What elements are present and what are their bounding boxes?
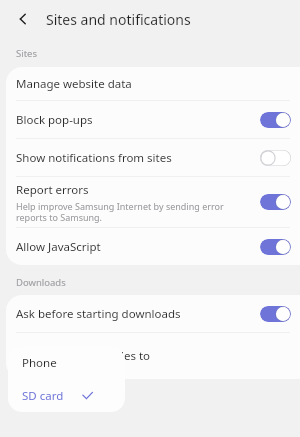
staticText: Help improve Samsung Internet by sending… bbox=[16, 200, 224, 223]
button[interactable]: Show notifications from sites bbox=[6, 139, 300, 176]
button[interactable]: Report errors bbox=[6, 177, 300, 227]
staticText: Save downloaded files to bbox=[16, 348, 151, 364]
staticText: Manage website data bbox=[16, 76, 132, 92]
button[interactable]: Ask before starting downloads bbox=[6, 295, 300, 332]
button[interactable]: Toggle on bbox=[260, 194, 291, 210]
staticText: Downloads bbox=[16, 276, 66, 289]
staticText: Block pop-ups bbox=[16, 112, 93, 128]
button[interactable]: Toggle on bbox=[260, 239, 291, 255]
button[interactable]: Toggle on bbox=[260, 306, 291, 322]
staticText: Phone bbox=[22, 355, 57, 371]
button[interactable]: Toggle on bbox=[260, 112, 291, 128]
button[interactable]: SD card bbox=[8, 379, 125, 412]
button[interactable]: Save downloaded files to bbox=[6, 333, 300, 379]
button[interactable]: Back bbox=[8, 4, 38, 34]
button[interactable]: Toggle off bbox=[260, 150, 291, 166]
staticText: Show notifications from sites bbox=[16, 150, 172, 166]
staticText: Sites bbox=[16, 47, 38, 60]
button[interactable]: Manage website data bbox=[6, 67, 300, 100]
staticText: Allow JavaScript bbox=[16, 239, 101, 255]
button[interactable]: Block pop-ups bbox=[6, 101, 300, 138]
button[interactable]: Phone bbox=[8, 347, 125, 379]
staticText: Sites and notifications bbox=[46, 10, 191, 29]
staticText: Report errors bbox=[16, 182, 89, 198]
staticText: Ask before starting downloads bbox=[16, 306, 181, 322]
button[interactable]: Allow JavaScript bbox=[6, 228, 300, 265]
staticText: SD card bbox=[22, 388, 64, 404]
